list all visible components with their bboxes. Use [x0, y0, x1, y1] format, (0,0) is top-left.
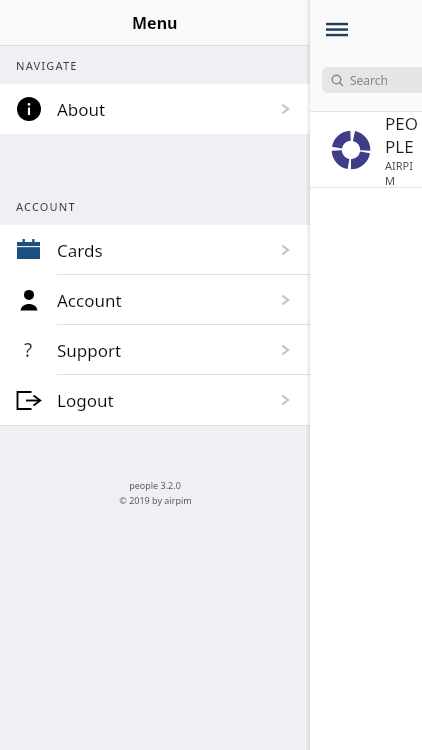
staticText: Support: [57, 339, 122, 362]
button[interactable]: ?: [0, 325, 310, 375]
staticText: Cards: [57, 239, 103, 262]
button[interactable]: Account: [0, 275, 310, 325]
staticText: Logout: [57, 389, 114, 412]
staticText: ACCOUNT: [16, 199, 76, 214]
staticText: About: [57, 98, 106, 121]
staticText: Menu: [132, 12, 178, 34]
staticText: Search: [350, 72, 388, 88]
button[interactable]: Cards: [0, 225, 310, 275]
staticText: AIRPIM: [385, 158, 422, 187]
button[interactable]: About: [0, 84, 310, 134]
staticText: Account: [57, 289, 122, 312]
button[interactable]: Search: [322, 67, 422, 93]
staticText: NAVIGATE: [16, 58, 78, 73]
staticText: people 3.2.0: [129, 479, 181, 491]
staticText: © 2019 by airpim: [119, 494, 192, 506]
staticText: PEOPLE: [385, 112, 422, 158]
button[interactable]: Logout: [0, 375, 310, 425]
button[interactable]: Open menu: [322, 14, 352, 44]
staticText: ?: [24, 337, 33, 363]
button[interactable]: PEOPLE: [0, 112, 422, 187]
